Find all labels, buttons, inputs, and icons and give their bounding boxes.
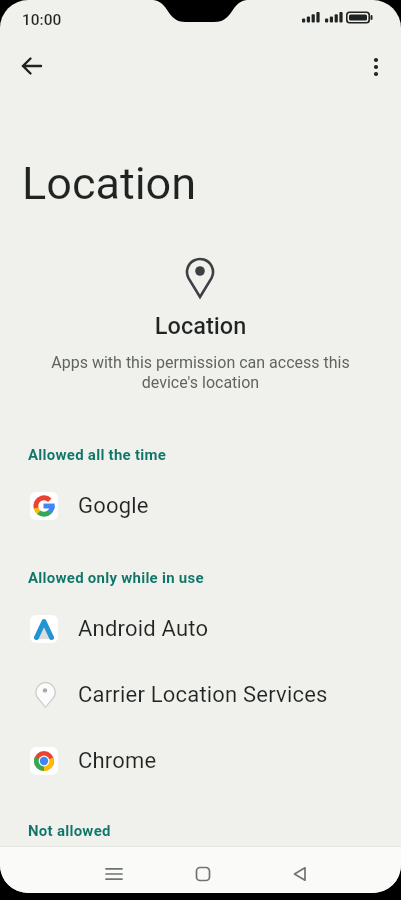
button[interactable]: Carrier Location Services (16, 673, 385, 717)
button[interactable]: Google (16, 484, 385, 528)
staticText: Android Auto (78, 616, 209, 642)
button[interactable] (354, 45, 398, 89)
button[interactable]: Chrome (16, 739, 385, 783)
staticText: Carrier Location Services (78, 682, 328, 708)
staticText: Apps with this permission can access thi… (0, 353, 401, 392)
staticText: Location (0, 312, 401, 340)
button[interactable]: Android Auto (16, 607, 385, 651)
staticText: 10:00 (22, 11, 62, 29)
button[interactable] (181, 855, 225, 893)
staticText: Google (78, 493, 149, 519)
staticText: Allowed only while in use (28, 569, 204, 587)
button[interactable] (92, 855, 136, 893)
button[interactable] (10, 44, 54, 88)
staticText: Chrome (78, 748, 157, 774)
staticText: Not allowed (28, 822, 111, 840)
button[interactable] (278, 855, 322, 893)
staticText: Allowed all the time (28, 446, 167, 464)
staticText: Location (22, 157, 197, 210)
